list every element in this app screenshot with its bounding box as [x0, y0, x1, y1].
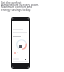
staticText: temperature in every room.	[1, 3, 40, 7]
staticText: Maximize comfort and	[1, 5, 33, 9]
staticText: Set the perfect	[1, 1, 22, 5]
staticText: energy savings today.	[1, 8, 32, 12]
